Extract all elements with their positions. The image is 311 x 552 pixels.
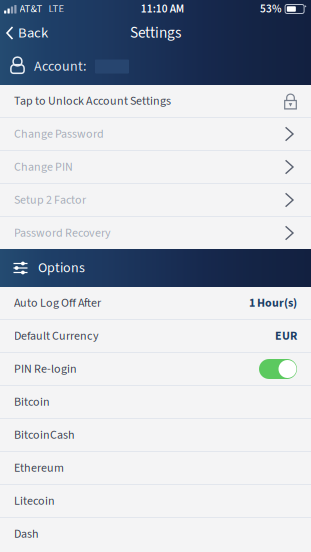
staticText: 1 Hour(s): [249, 294, 297, 312]
staticText: LTE: [49, 1, 65, 17]
staticText: Dash: [14, 525, 39, 543]
button[interactable]: Bitcoin: [0, 386, 311, 418]
staticText: Options: [38, 258, 85, 278]
button[interactable]: Password Recovery: [0, 217, 311, 249]
staticText: Ethereum: [14, 459, 64, 477]
staticText: Change Password: [14, 125, 104, 143]
staticText: Account:: [34, 56, 86, 76]
button[interactable]: Default Currency: [0, 320, 311, 352]
staticText: Auto Log Off After: [14, 294, 101, 312]
button[interactable]: Back: [0, 18, 54, 48]
button[interactable]: Litecoin: [0, 485, 311, 517]
button[interactable]: BitcoinCash: [0, 419, 311, 451]
button[interactable]: Dash: [0, 518, 311, 550]
button[interactable]: Setup 2 Factor: [0, 184, 311, 216]
button[interactable]: Tap to Unlock Account Settings: [0, 85, 311, 117]
button[interactable]: Change Password: [0, 118, 311, 150]
button[interactable]: Auto Log Off After: [0, 287, 311, 319]
button[interactable]: PIN Re-login: [0, 353, 311, 385]
staticText: Bitcoin: [14, 393, 50, 411]
staticText: PIN Re-login: [14, 360, 77, 378]
staticText: Change PIN: [14, 158, 73, 176]
staticText: 11:10 AM: [141, 1, 184, 17]
staticText: Settings: [130, 22, 181, 44]
button[interactable]: Change PIN: [0, 151, 311, 183]
staticText: Tap to Unlock Account Settings: [14, 92, 171, 110]
staticText: Default Currency: [14, 327, 99, 345]
staticText: Password Recovery: [14, 224, 111, 242]
staticText: Setup 2 Factor: [14, 191, 86, 209]
staticText: Back: [18, 23, 48, 43]
staticText: AT&T: [20, 1, 43, 17]
staticText: BitcoinCash: [14, 426, 75, 444]
staticText: EUR: [275, 327, 297, 345]
staticText: 53%: [260, 1, 282, 17]
button[interactable]: Ethereum: [0, 452, 311, 484]
staticText: Litecoin: [14, 492, 55, 510]
